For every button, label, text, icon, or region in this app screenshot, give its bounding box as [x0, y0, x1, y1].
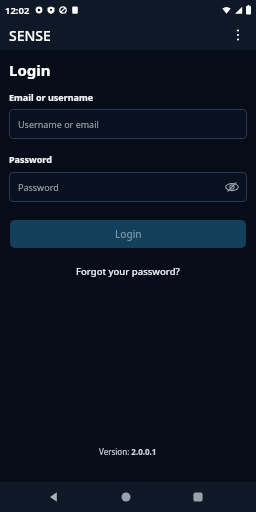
- button[interactable]: Password: [9, 172, 247, 202]
- staticText: Email or username: [9, 91, 94, 103]
- staticText: Login: [9, 60, 51, 80]
- button[interactable]: [225, 180, 239, 194]
- button[interactable]: [193, 492, 203, 502]
- staticText: Username or email: [18, 118, 99, 130]
- staticText: Password: [9, 153, 52, 165]
- button[interactable]: [121, 492, 131, 502]
- staticText: Login: [115, 227, 142, 241]
- button[interactable]: [225, 22, 251, 48]
- button[interactable]: Username or email: [9, 109, 247, 139]
- button[interactable]: Forgot your password?: [76, 265, 180, 278]
- staticText: 12:02: [5, 4, 30, 17]
- staticText: Version: 2.0.0.1: [99, 446, 157, 457]
- button[interactable]: [49, 492, 59, 502]
- staticText: SENSE: [9, 26, 51, 45]
- button[interactable]: Login: [10, 220, 246, 248]
- staticText: Password: [18, 181, 59, 193]
